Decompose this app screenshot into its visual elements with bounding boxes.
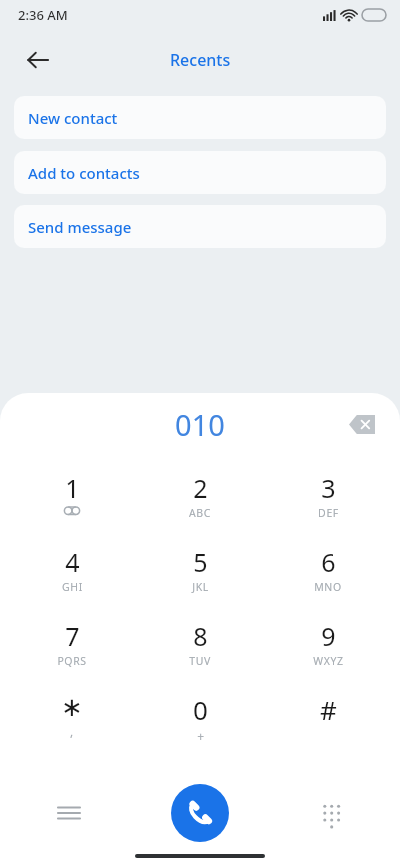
staticText: 4	[65, 545, 80, 579]
button[interactable]: #	[272, 685, 384, 759]
staticText: PQRS	[57, 654, 87, 668]
staticText: 1	[65, 471, 80, 505]
staticText: ABC	[189, 506, 211, 520]
button[interactable]: 7	[16, 611, 128, 685]
button[interactable]: 8	[144, 611, 256, 685]
button[interactable]: 6	[272, 537, 384, 611]
staticText: 010	[175, 405, 225, 444]
staticText: 8	[193, 619, 208, 653]
staticText: 2	[193, 471, 208, 505]
staticText: Send message	[28, 217, 132, 237]
staticText: 5	[193, 545, 208, 579]
staticText: ∗	[61, 692, 83, 722]
button[interactable]: Send message	[14, 205, 386, 248]
button[interactable]: Add to contacts	[14, 151, 386, 194]
button[interactable]: Dialpad	[307, 789, 355, 837]
staticText: DEF	[318, 506, 339, 520]
staticText: MNO	[314, 580, 342, 594]
staticText: 9	[321, 619, 336, 653]
button[interactable]: 9	[272, 611, 384, 685]
staticText: New contact	[28, 108, 118, 128]
staticText: 7	[65, 619, 80, 653]
button[interactable]: 4	[16, 537, 128, 611]
staticText: 0	[193, 692, 208, 727]
staticText: JKL	[192, 580, 209, 594]
staticText: #	[320, 692, 337, 727]
button[interactable]: ∗	[16, 685, 128, 759]
staticText: 6	[321, 545, 336, 579]
button[interactable]: Call	[171, 784, 229, 842]
button[interactable]: 1	[16, 463, 128, 537]
button[interactable]: New contact	[14, 96, 386, 139]
staticText: TUV	[189, 654, 211, 668]
button[interactable]: Back	[16, 38, 60, 82]
staticText: GHI	[62, 580, 83, 594]
button[interactable]: 3	[272, 463, 384, 537]
staticText: WXYZ	[313, 654, 344, 668]
button[interactable]: 2	[144, 463, 256, 537]
button[interactable]: 0	[144, 685, 256, 759]
staticText: 2:36 AM	[18, 6, 68, 24]
button[interactable]: Backspace	[342, 404, 382, 444]
staticText: ,	[70, 723, 74, 739]
staticText: Add to contacts	[28, 163, 140, 183]
staticText: +	[197, 728, 205, 744]
staticText: Recents	[170, 49, 231, 71]
button[interactable]: Menu	[45, 789, 93, 837]
staticText: 3	[321, 471, 336, 505]
button[interactable]: 5	[144, 537, 256, 611]
